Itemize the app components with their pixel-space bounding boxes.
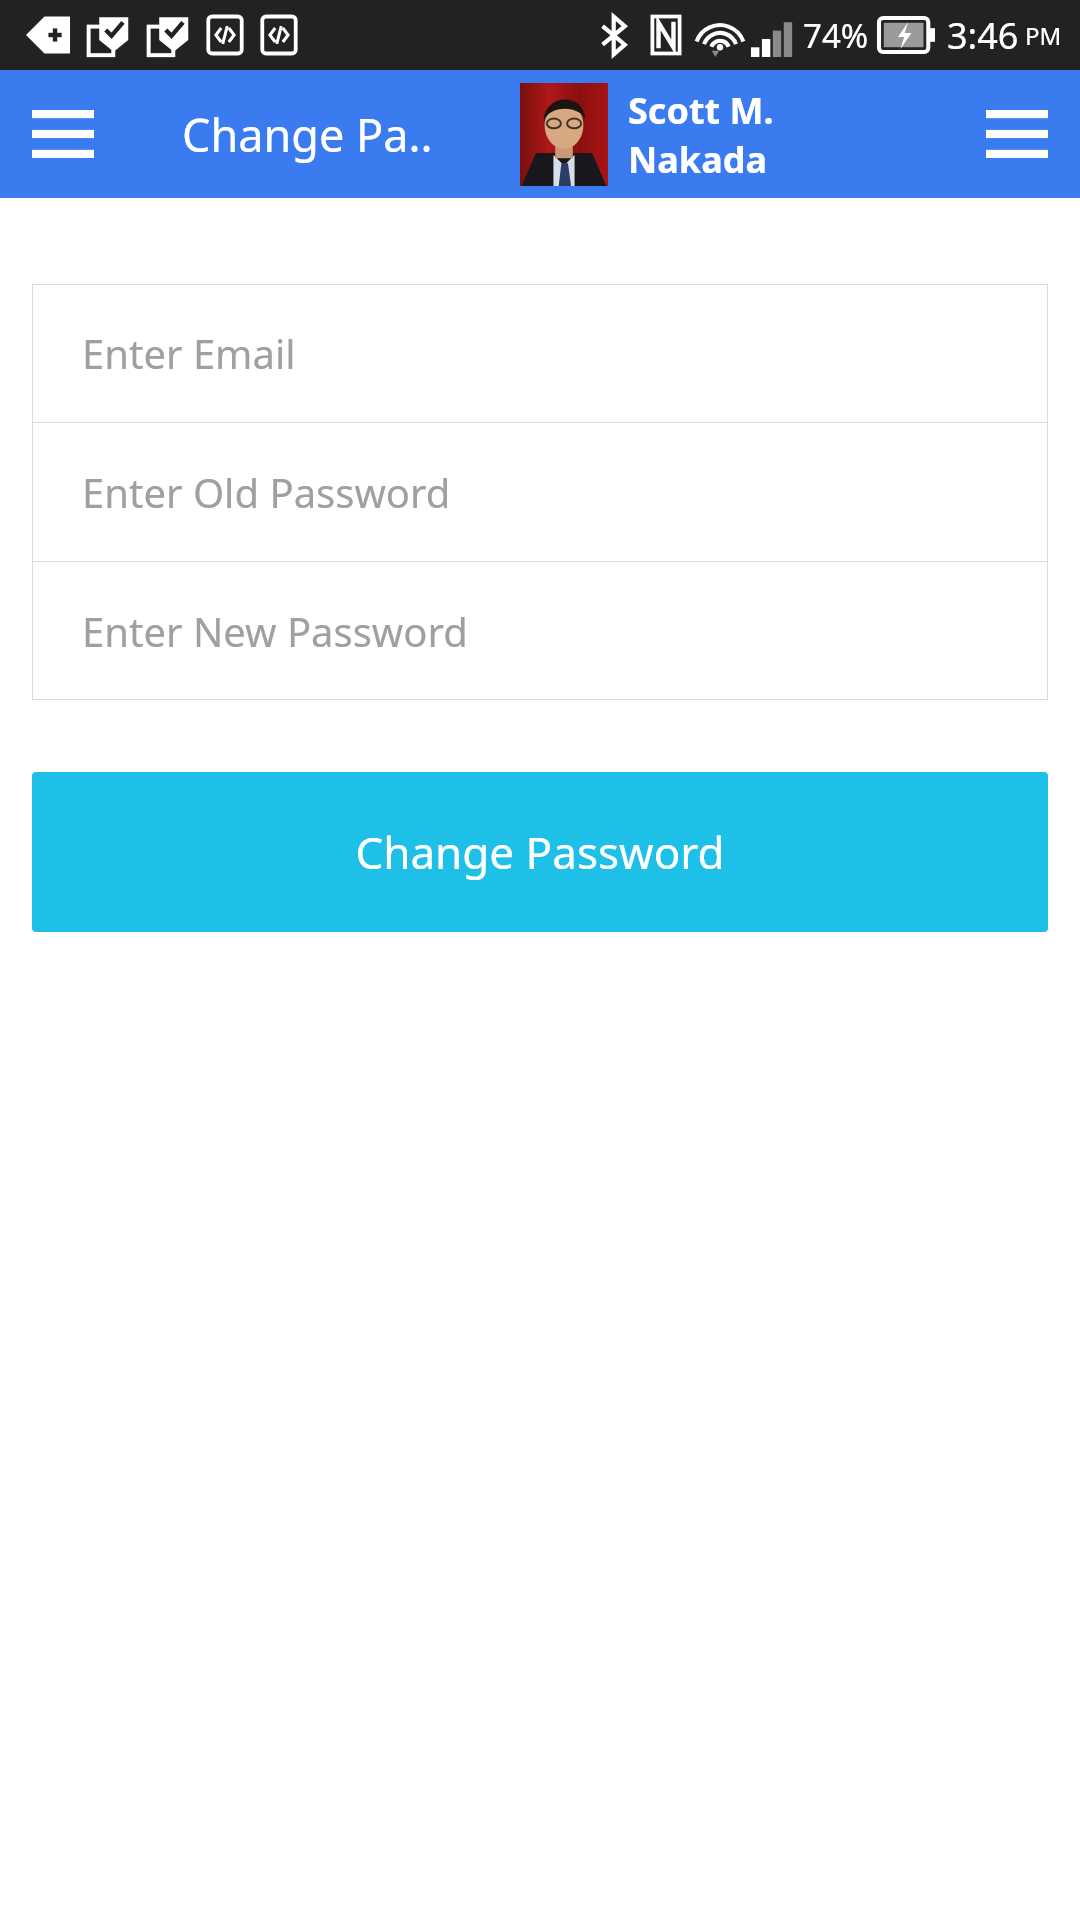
- button[interactable]: Open navigation menu: [24, 95, 102, 173]
- staticText: Change Password: [355, 822, 725, 882]
- button[interactable]: Enter Old Password: [32, 423, 1048, 561]
- button[interactable]: Enter New Password: [32, 562, 1048, 700]
- staticText: 3:46: [947, 11, 1019, 60]
- button[interactable]: Scott M. Nakada: [520, 83, 774, 186]
- staticText: 74%: [803, 13, 869, 58]
- button[interactable]: Enter Email: [32, 284, 1048, 422]
- staticText: Enter Email: [82, 326, 296, 380]
- button[interactable]: Change Password: [32, 772, 1048, 932]
- staticText: Enter Old Password: [82, 465, 451, 519]
- staticText: Scott M. Nakada: [628, 86, 774, 183]
- staticText: Enter New Password: [82, 604, 468, 658]
- staticText: PM: [1025, 19, 1062, 52]
- button[interactable]: More options: [978, 95, 1056, 173]
- staticText: Change Pa..: [182, 104, 433, 165]
